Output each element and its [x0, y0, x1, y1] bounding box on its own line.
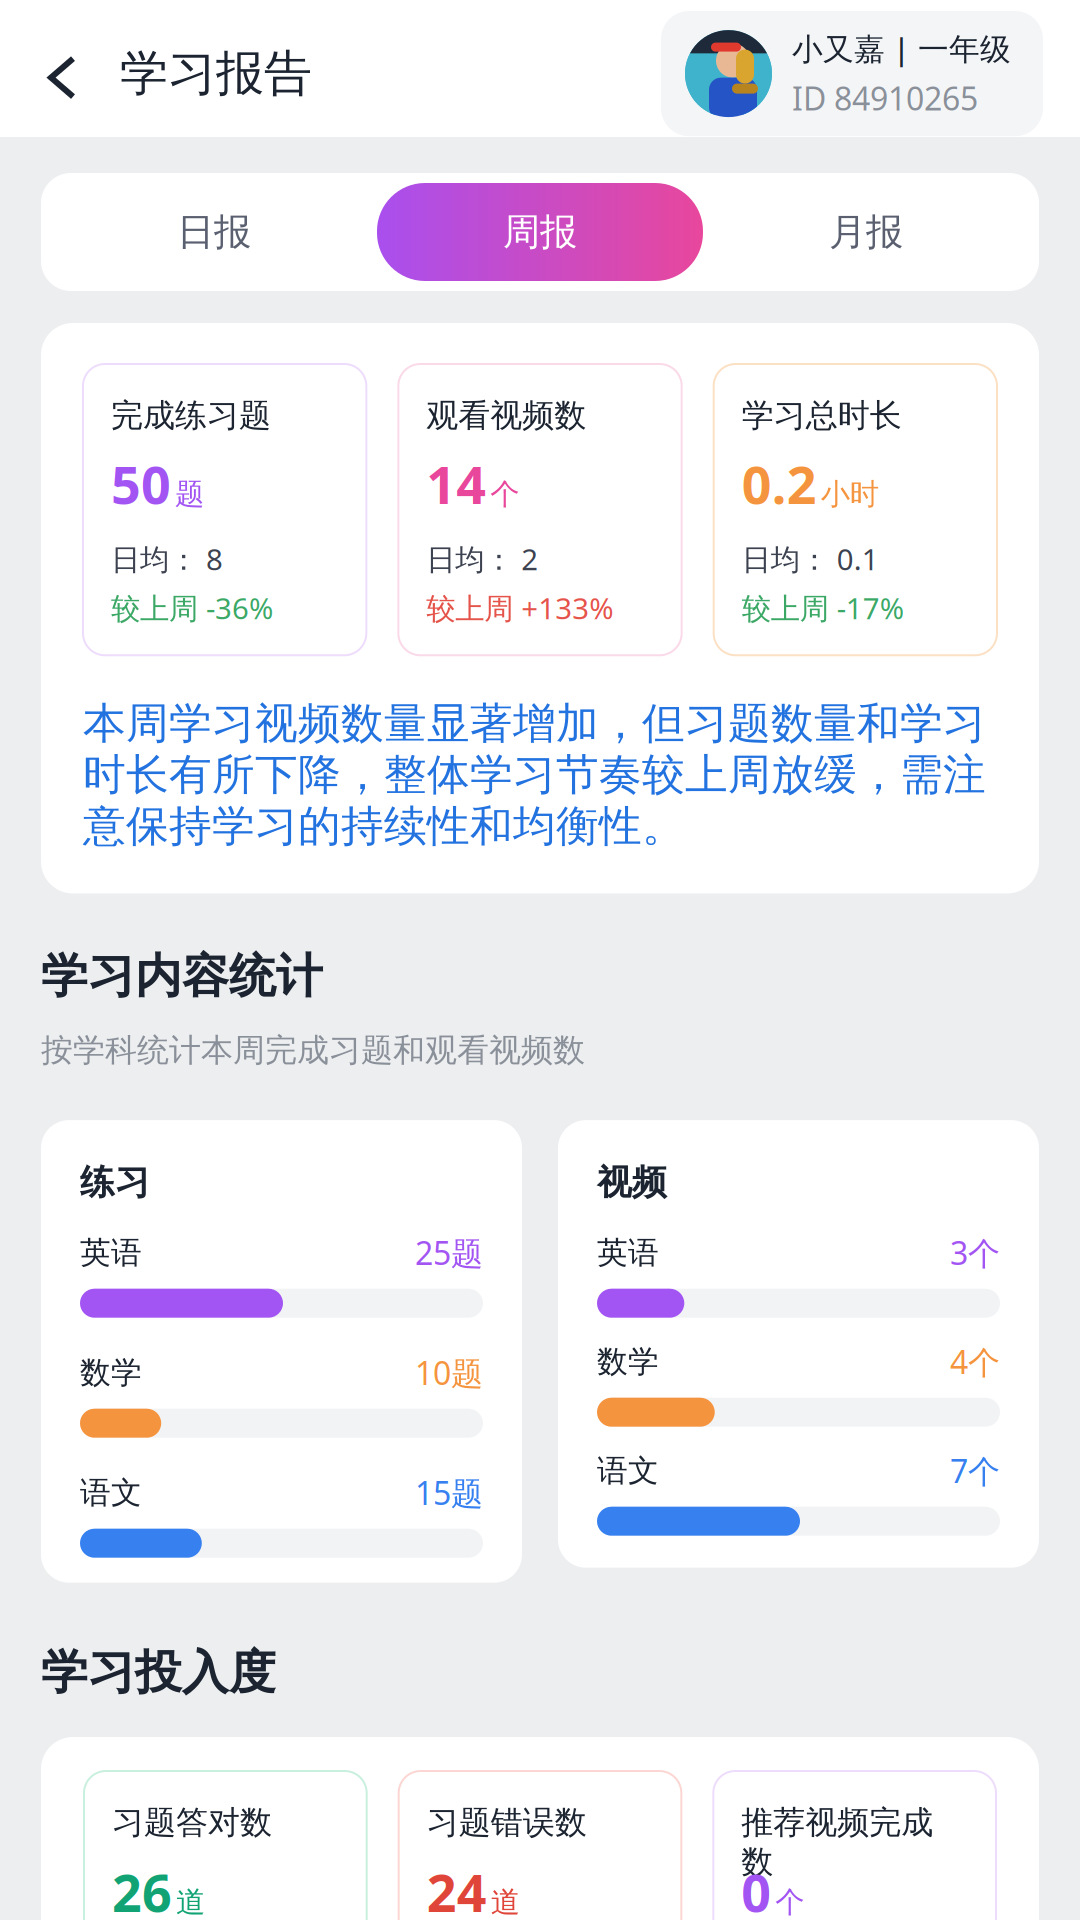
staticText: 道	[176, 1884, 205, 1920]
staticText: 练习	[80, 1161, 150, 1204]
staticText: 小时	[821, 476, 879, 512]
staticText: 本周学习视频数量显著增加，但习题数量和学习时长有所下降，整体学习节奏较上周放缓，…	[83, 697, 986, 852]
staticText: 数学	[597, 1343, 659, 1381]
staticText: 较上周 -36%	[111, 588, 273, 627]
staticText: 习题错误数	[427, 1803, 587, 1842]
staticText: 月报	[829, 209, 903, 255]
staticText: 7个	[950, 1449, 1000, 1492]
staticText: 学习总时长	[742, 396, 902, 435]
button[interactable]: 日报	[51, 183, 377, 281]
staticText: 14	[426, 449, 486, 518]
button[interactable]: 周报	[377, 183, 703, 281]
staticText: 较上周 -17%	[742, 588, 904, 627]
staticText: 个	[490, 476, 519, 512]
staticText: 推荐视频完成数	[741, 1803, 933, 1842]
staticText: 0	[741, 1857, 771, 1920]
staticText: 24	[427, 1857, 487, 1920]
staticText: 数学	[80, 1354, 142, 1392]
staticText: 学习投入度	[41, 1644, 276, 1701]
staticText: ID 84910265	[792, 77, 978, 119]
staticText: 个	[775, 1884, 804, 1920]
staticText: 按学科统计本周完成习题和观看视频数	[41, 1031, 585, 1070]
staticText: 观看视频数	[426, 396, 586, 435]
staticText: 较上周 +133%	[426, 588, 613, 627]
staticText: 道	[491, 1884, 520, 1920]
staticText: 完成练习题	[111, 396, 271, 435]
staticText: 0.2	[742, 449, 817, 518]
staticText: 学习报告	[120, 44, 312, 103]
staticText: 英语	[597, 1234, 659, 1272]
staticText: 视频	[597, 1161, 667, 1204]
staticText: 3个	[950, 1231, 1000, 1274]
staticText: 日报	[177, 209, 251, 255]
staticText: 26	[112, 1857, 172, 1920]
staticText: 学习内容统计	[41, 947, 323, 1005]
staticText: 10题	[415, 1351, 483, 1394]
staticText: 语文	[597, 1452, 659, 1490]
staticText: 题	[175, 476, 204, 512]
staticText: 小又嘉 | 一年级	[792, 28, 1011, 69]
staticText: 4个	[950, 1340, 1000, 1383]
staticText: 日均： 2	[426, 539, 538, 578]
staticText: 习题答对数	[112, 1803, 272, 1842]
button[interactable]: 月报	[703, 183, 1029, 281]
staticText: 15题	[415, 1471, 483, 1514]
button[interactable]: 返回	[37, 39, 87, 109]
staticText: 50	[111, 449, 171, 518]
staticText: 语文	[80, 1474, 142, 1512]
staticText: 周报	[503, 209, 577, 255]
staticText: 英语	[80, 1234, 142, 1272]
staticText: 日均： 0.1	[742, 539, 879, 578]
staticText: 日均： 8	[111, 539, 223, 578]
staticText: 25题	[415, 1231, 483, 1274]
button[interactable]: 小又嘉 一年级 ID 84910265	[661, 11, 1043, 136]
